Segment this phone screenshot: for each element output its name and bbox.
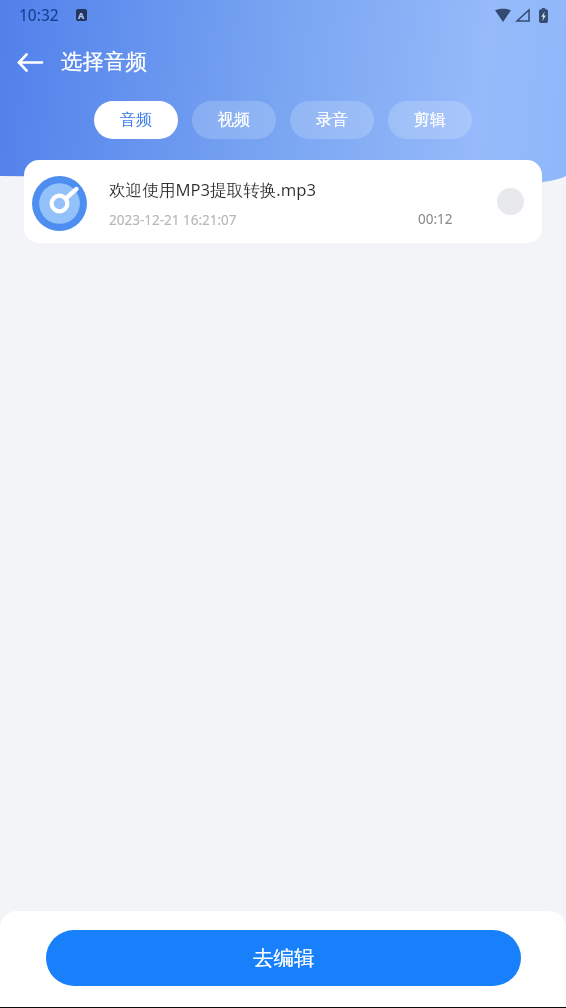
- staticText: 剪辑: [414, 110, 446, 130]
- button[interactable]: 视频: [192, 101, 276, 139]
- staticText: A: [78, 9, 85, 21]
- staticText: 00:12: [418, 210, 453, 228]
- button[interactable]: 欢迎使用MP3提取转换.mp3: [24, 160, 542, 243]
- button[interactable]: 剪辑: [388, 101, 472, 139]
- button[interactable]: 录音: [290, 101, 374, 139]
- button[interactable]: 去编辑: [46, 930, 521, 986]
- staticText: 去编辑: [253, 945, 315, 971]
- button[interactable]: 音频: [94, 101, 178, 139]
- staticText: 10:32: [19, 4, 59, 25]
- staticText: 欢迎使用MP3提取转换.mp3: [109, 178, 316, 201]
- staticText: 录音: [316, 110, 348, 130]
- button[interactable]: Select item: [497, 188, 524, 215]
- staticText: 选择音频: [61, 48, 147, 75]
- staticText: 音频: [120, 110, 152, 130]
- staticText: 2023-12-21 16:21:07: [109, 211, 237, 229]
- staticText: 视频: [218, 110, 250, 130]
- button[interactable]: Back: [8, 40, 52, 84]
